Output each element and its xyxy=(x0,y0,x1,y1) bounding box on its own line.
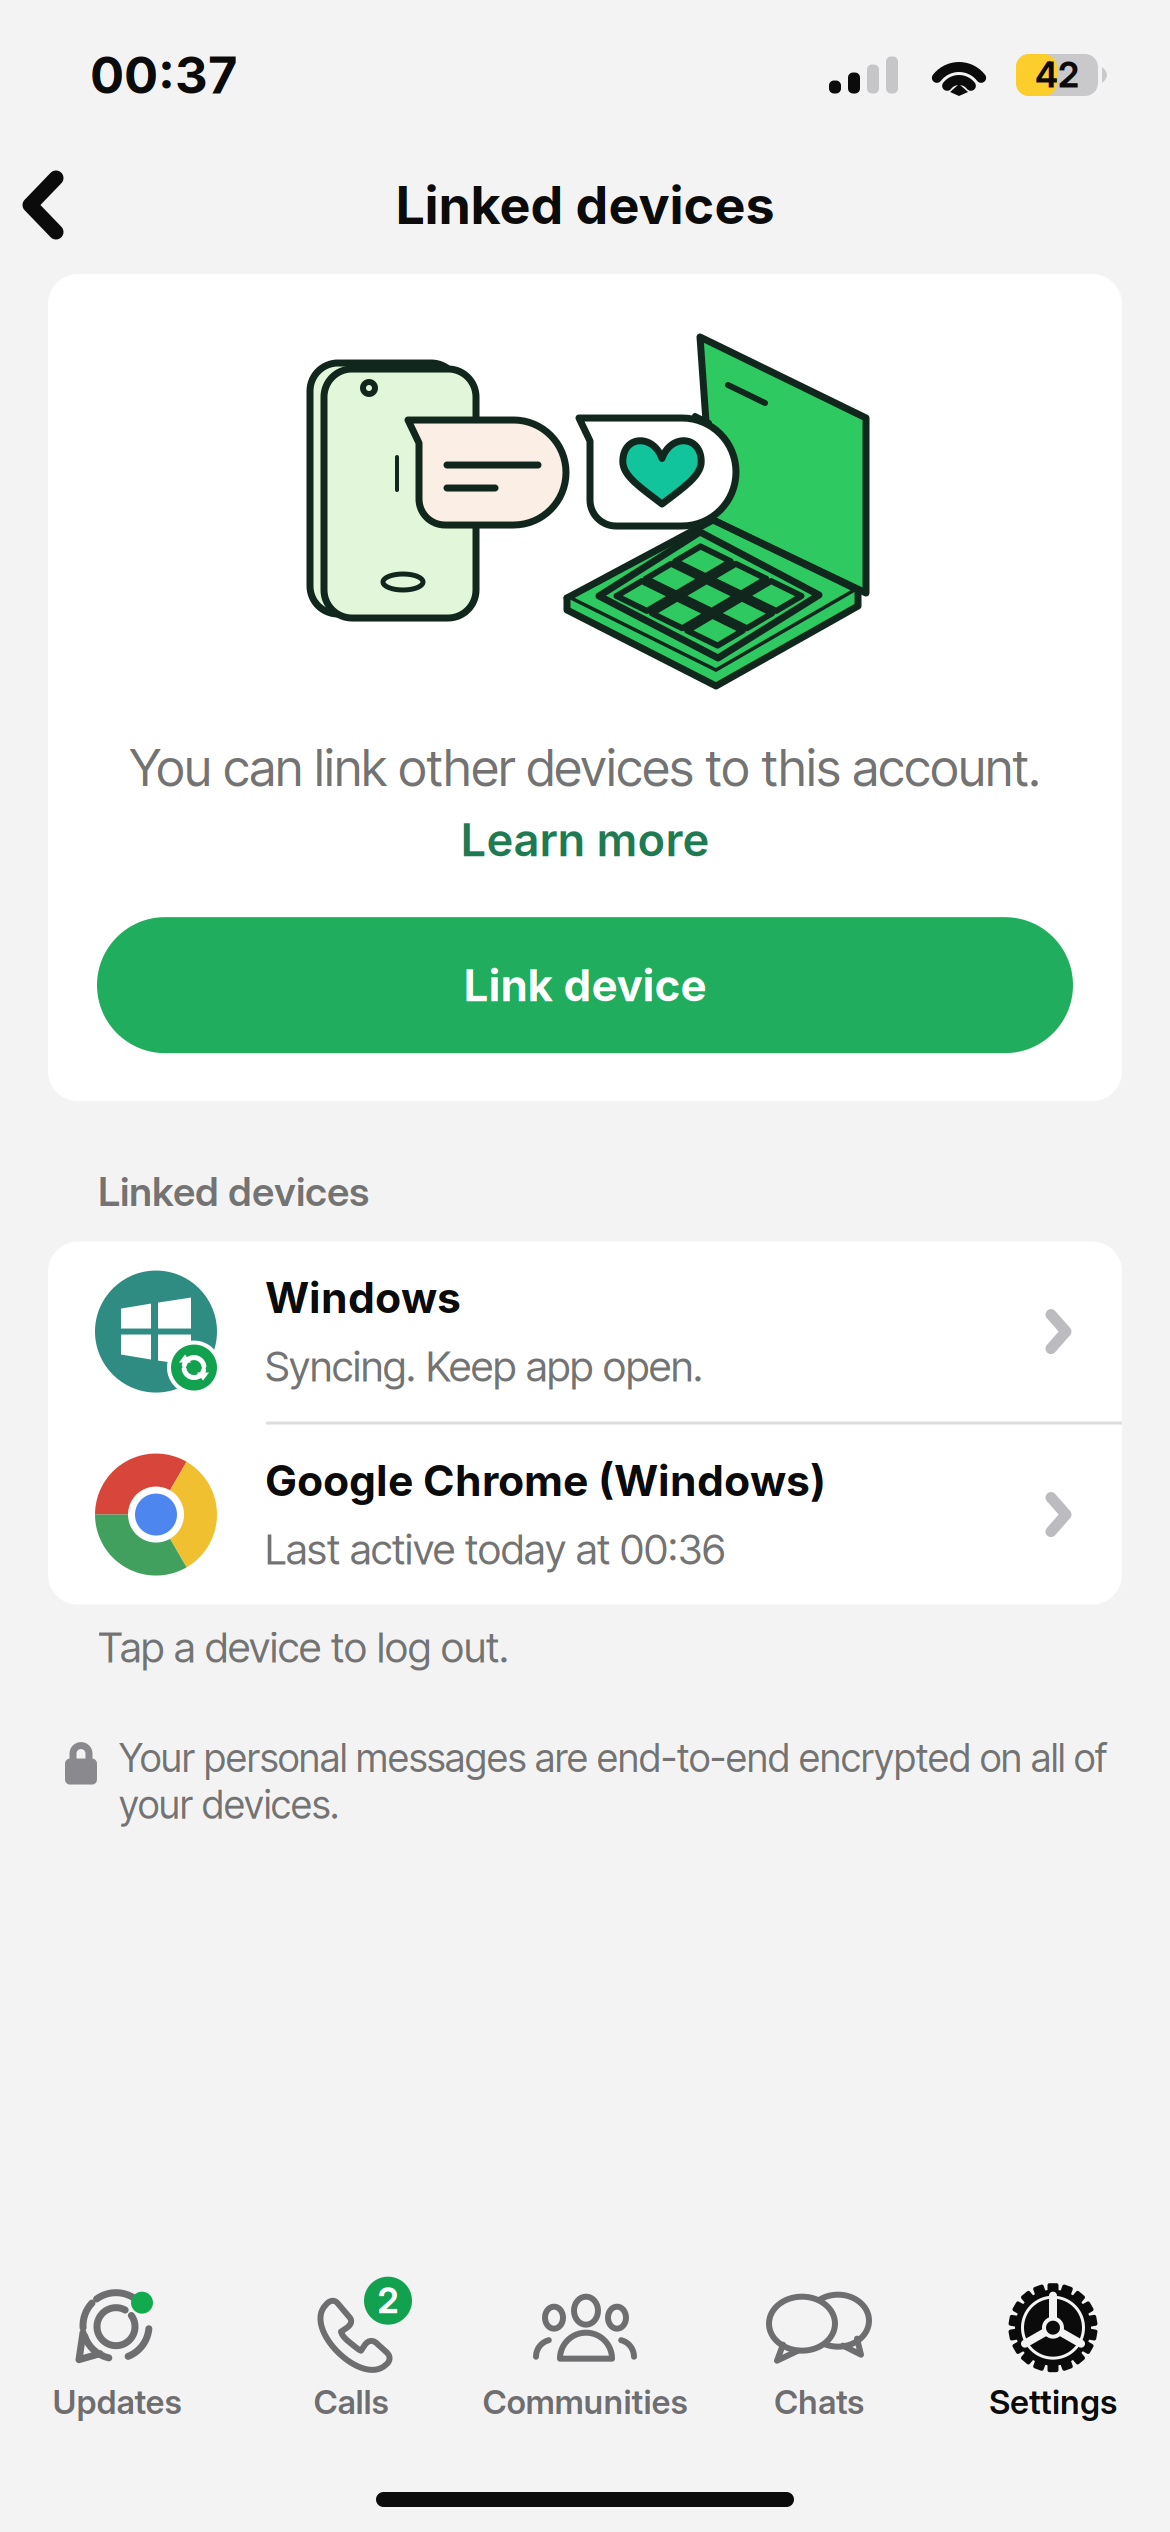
button[interactable]: Back xyxy=(0,156,90,254)
staticText: Last active today at 00:36 xyxy=(265,1524,725,1574)
button[interactable]: Communities xyxy=(468,2286,702,2422)
staticText: 2 xyxy=(377,2280,398,2322)
button[interactable]: Learn more xyxy=(460,798,709,871)
staticText: Settings xyxy=(989,2382,1117,2422)
button[interactable]: Updates xyxy=(0,2286,234,2422)
staticText: 00:37 xyxy=(90,44,237,106)
staticText: Linked devices xyxy=(98,1167,369,1216)
staticText: Communities xyxy=(482,2382,687,2422)
button[interactable]: Chats xyxy=(702,2286,936,2422)
staticText: Updates xyxy=(52,2382,181,2422)
staticText: Tap a device to log out. xyxy=(98,1623,509,1673)
staticText: Chats xyxy=(774,2382,864,2422)
button[interactable]: Google Chrome (Windows) xyxy=(48,1425,1122,1605)
button[interactable]: Windows xyxy=(48,1242,1122,1422)
staticText: Linked devices xyxy=(395,173,774,236)
staticText: Your personal messages are end-to-end en… xyxy=(119,1735,1107,1828)
staticText: Calls xyxy=(313,2382,388,2422)
staticText: 42 xyxy=(1035,54,1079,96)
staticText: Google Chrome (Windows) xyxy=(265,1455,826,1506)
button[interactable]: Settings xyxy=(936,2286,1170,2422)
staticText: You can link other devices to this accou… xyxy=(129,737,1040,798)
staticText: Learn more xyxy=(460,812,709,867)
staticText: Windows xyxy=(265,1272,461,1323)
staticText: Syncing. Keep app open. xyxy=(265,1341,703,1391)
staticText: Link device xyxy=(463,958,706,1012)
button[interactable]: 2 xyxy=(234,2286,468,2422)
button[interactable]: Link device xyxy=(97,917,1073,1053)
